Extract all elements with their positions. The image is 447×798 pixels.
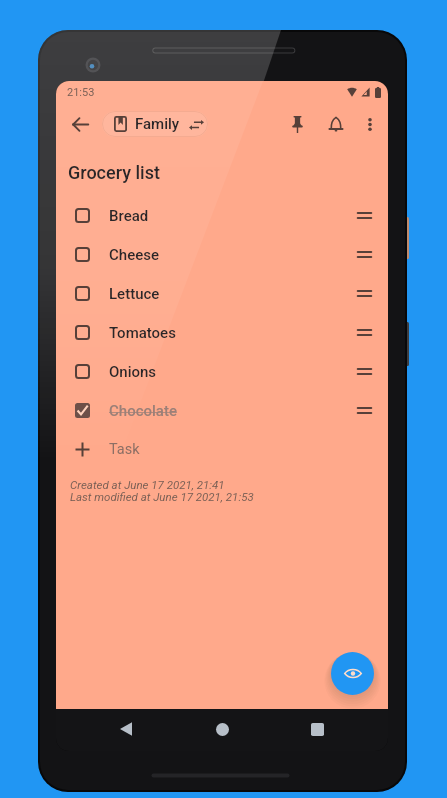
button[interactable]: Chocolate xyxy=(56,391,388,430)
button[interactable]: Bread xyxy=(56,196,388,235)
staticText: Onions xyxy=(109,363,157,381)
button[interactable]: Onions xyxy=(56,352,388,391)
staticText: Tomatoes xyxy=(109,324,176,342)
staticText: Task xyxy=(109,441,140,458)
button[interactable]: Add reminder xyxy=(320,108,352,140)
staticText: Family xyxy=(135,115,180,133)
button[interactable]: Tomatoes xyxy=(56,313,388,352)
button[interactable]: Family xyxy=(102,111,208,137)
staticText: Created at June 17 2021, 21:41 Last modi… xyxy=(70,478,254,504)
staticText: Bread xyxy=(109,207,149,225)
button[interactable]: Task xyxy=(56,430,388,469)
button[interactable]: Lettuce xyxy=(56,274,388,313)
button[interactable]: Back xyxy=(109,712,143,746)
staticText: 21:53 xyxy=(67,86,95,99)
button[interactable]: Recent apps xyxy=(300,712,334,746)
staticText: Cheese xyxy=(109,246,159,264)
button[interactable]: Navigate up xyxy=(65,109,95,139)
button[interactable]: Pin xyxy=(281,108,313,140)
button[interactable]: More options xyxy=(355,109,385,139)
button[interactable]: Home xyxy=(205,712,239,746)
button[interactable]: Cheese xyxy=(56,235,388,274)
staticText: Lettuce xyxy=(109,285,160,303)
staticText: Grocery list xyxy=(68,162,160,183)
button[interactable]: Preview list xyxy=(331,652,374,695)
staticText: Chocolate xyxy=(109,402,177,420)
